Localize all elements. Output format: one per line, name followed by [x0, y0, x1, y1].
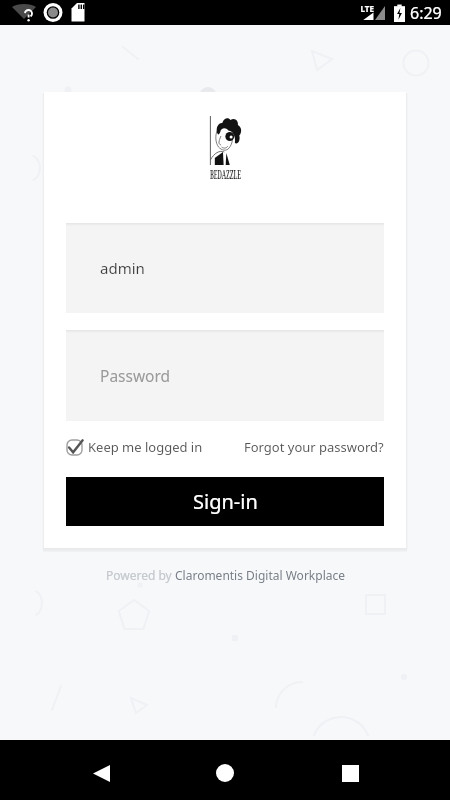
staticText: Powered by	[106, 567, 175, 583]
staticText: admin	[100, 258, 145, 278]
button[interactable]: Password	[66, 330, 384, 421]
staticText: Keep me logged in	[88, 438, 203, 456]
button[interactable]: Sign-in	[66, 477, 384, 526]
staticText: Claromentis Digital Workplace	[175, 567, 345, 583]
staticText: Forgot your password?	[244, 438, 384, 456]
button[interactable]: Forgot your password?	[244, 430, 384, 464]
staticText: Password	[100, 365, 171, 386]
button[interactable]: Recents	[326, 749, 374, 797]
button[interactable]: Home	[201, 749, 249, 797]
button[interactable]: Back	[77, 749, 125, 797]
button[interactable]: Keep me logged in	[66, 430, 203, 464]
staticText: 6:29	[410, 2, 442, 24]
staticText: Sign-in	[193, 488, 258, 515]
button[interactable]: admin	[66, 223, 384, 313]
